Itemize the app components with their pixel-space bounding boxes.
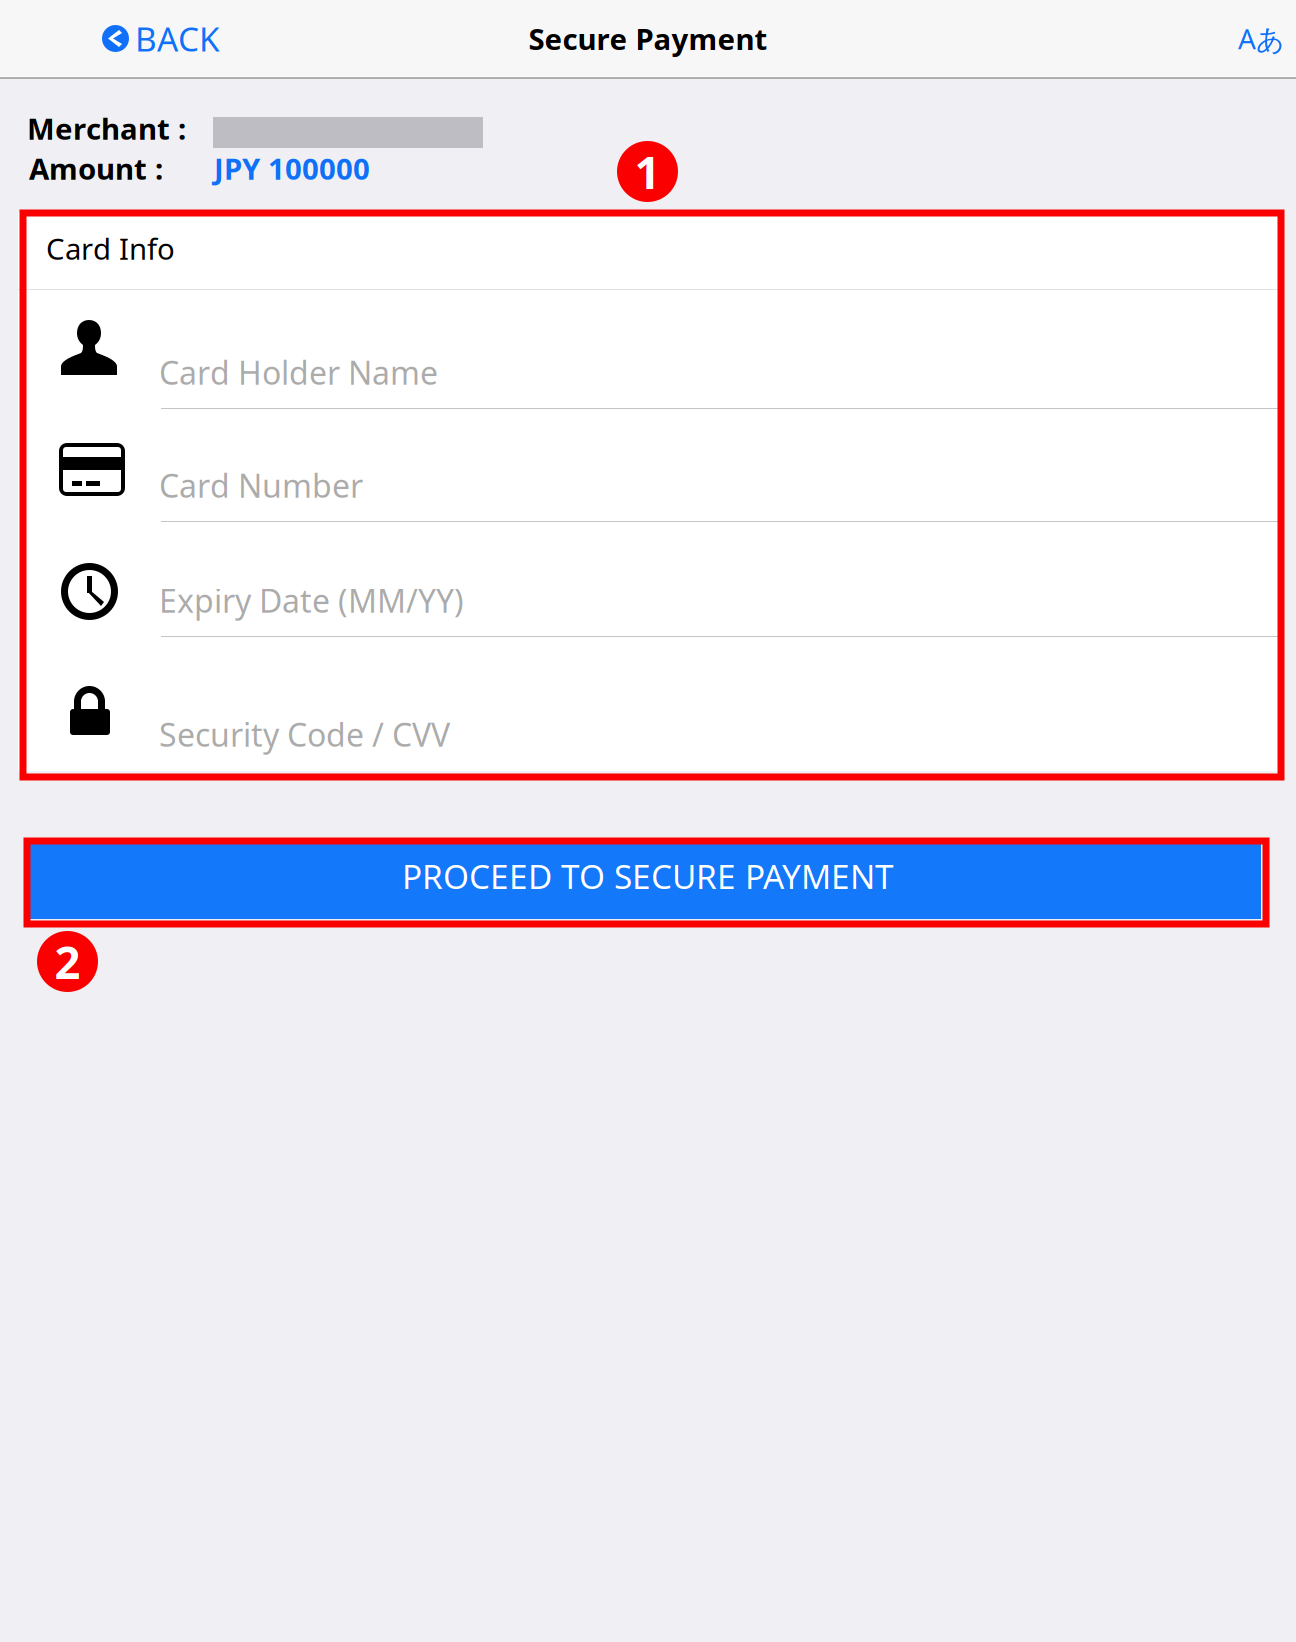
staticText: Card Info <box>46 229 175 268</box>
staticText: Amount : <box>29 149 163 188</box>
staticText: Merchant : <box>27 109 186 148</box>
button[interactable]: Card Number <box>18 409 1284 522</box>
staticText: PROCEED TO SECURE PAYMENT <box>402 854 894 898</box>
button[interactable]: Expiry Date (MM/YY) <box>18 522 1284 637</box>
staticText: Security Code / CVV <box>159 713 450 755</box>
staticText: Aあ <box>1238 20 1285 57</box>
staticText: 1 <box>634 141 660 202</box>
staticText: BACK <box>135 16 220 61</box>
staticText: Card Holder Name <box>159 351 438 393</box>
staticText: JPY 100000 <box>214 149 370 188</box>
button[interactable]: BACK <box>0 0 244 77</box>
staticText: 2 <box>54 931 80 992</box>
button[interactable]: Security Code / CVV <box>18 637 1284 771</box>
staticText: Card Number <box>159 464 363 506</box>
button[interactable]: Card Holder Name <box>18 290 1284 409</box>
button[interactable]: PROCEED TO SECURE PAYMENT <box>30 844 1261 919</box>
staticText: Expiry Date (MM/YY) <box>159 579 464 621</box>
button[interactable]: Language <box>1214 0 1296 77</box>
staticText: Secure Payment <box>528 19 767 58</box>
